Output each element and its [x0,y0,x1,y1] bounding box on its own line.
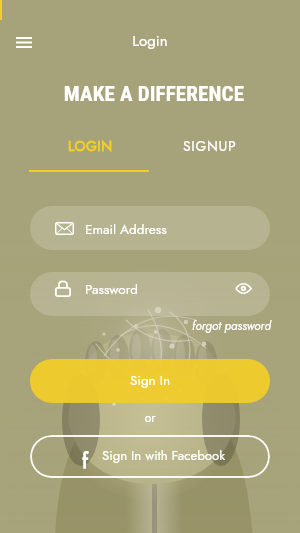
button[interactable]: Sign In [30,359,270,403]
staticText: Sign In with Facebook [102,446,225,465]
staticText: or [0,409,300,426]
button[interactable]: Email Address [30,206,270,250]
staticText: SIGNUP [183,136,237,156]
staticText: Email Address [85,220,167,240]
staticText: Password [85,280,138,300]
button[interactable]: Menu [4,22,44,62]
button[interactable]: LOGIN [30,136,150,160]
staticText: Sign In [130,371,171,391]
button[interactable]: forgot password [0,317,271,334]
button[interactable]: Show password [223,272,263,310]
button[interactable]: SIGNUP [150,136,270,160]
staticText: Login [0,30,300,52]
button[interactable]: f [30,435,270,478]
staticText: LOGIN [68,136,113,156]
button[interactable]: Password [30,272,270,316]
staticText: MAKE A DIFFERENCE [4,82,300,107]
staticText: f [82,446,89,476]
